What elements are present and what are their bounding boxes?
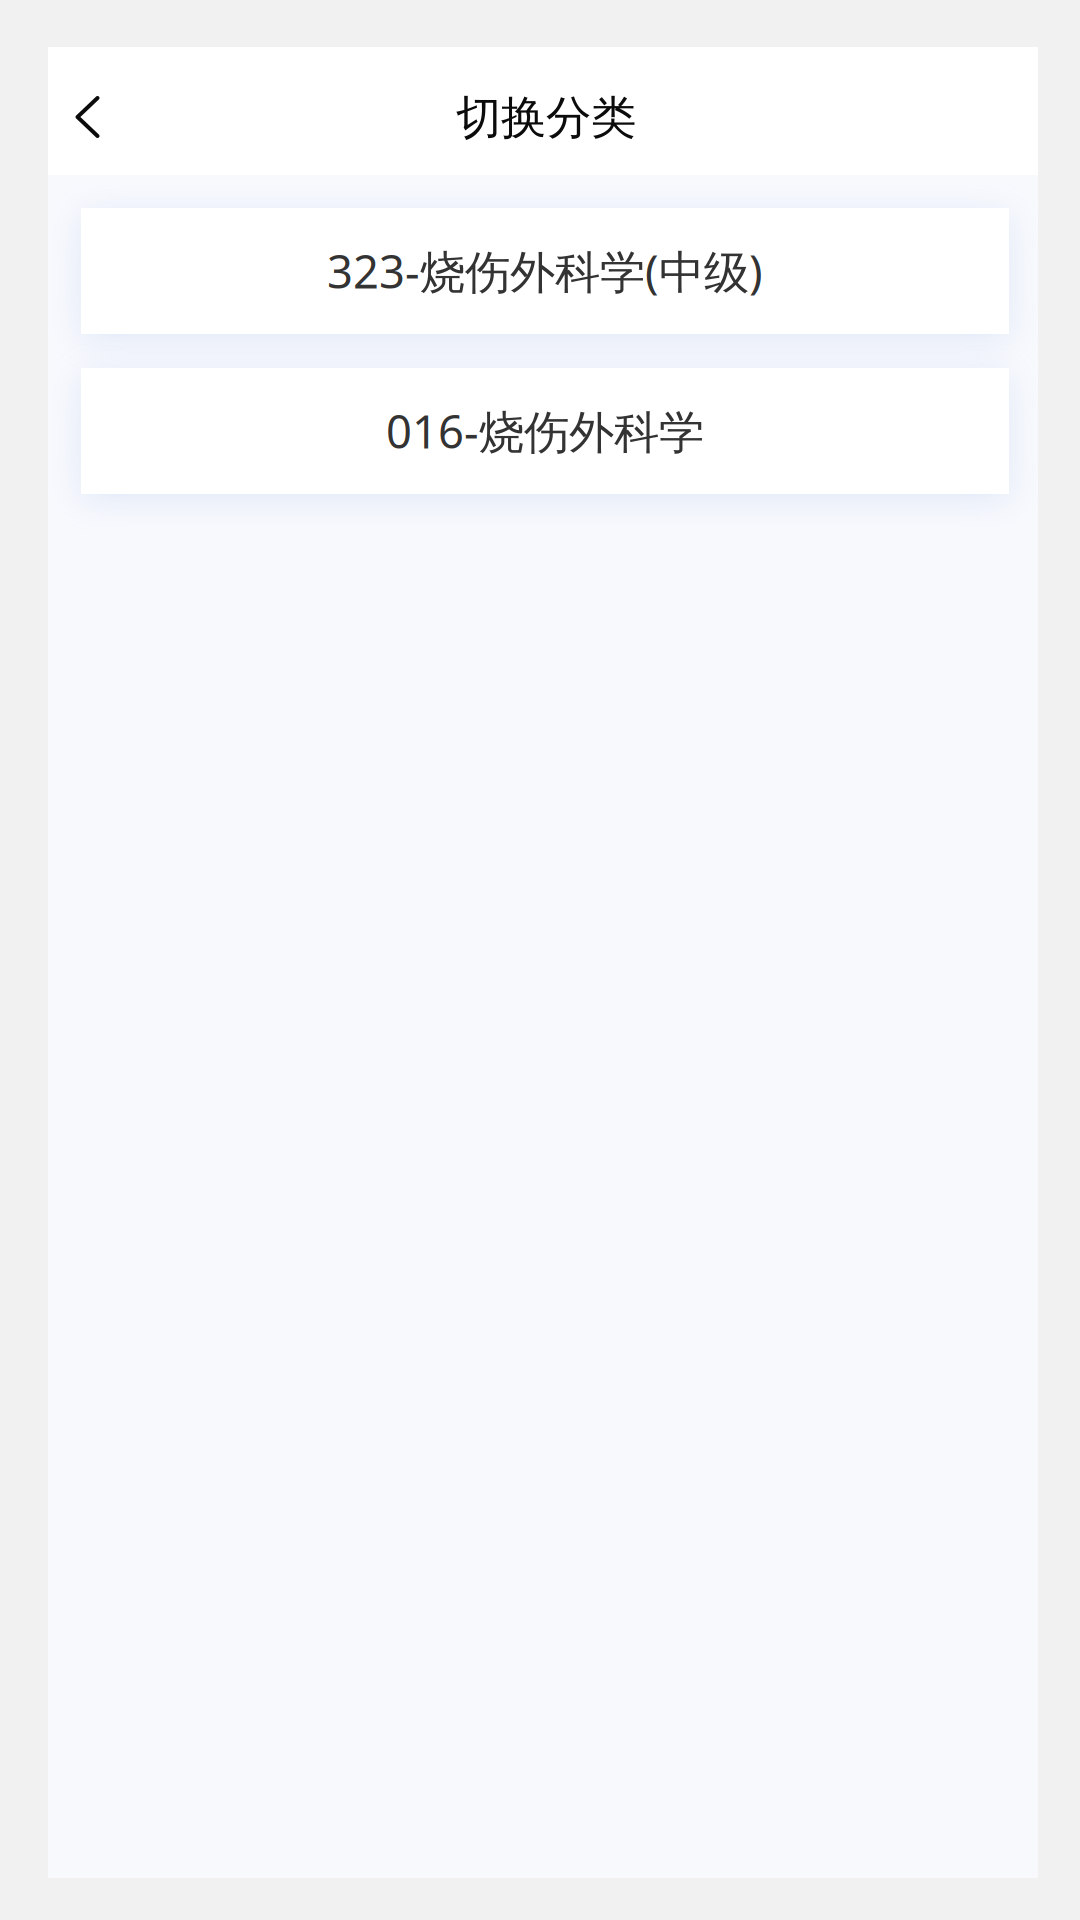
staticText: 323-烧伤外科学(中级) [327,241,763,301]
button[interactable]: Back [48,68,134,154]
staticText: 016-烧伤外科学 [386,401,704,461]
button[interactable]: 016-烧伤外科学 [81,368,1009,494]
button[interactable]: 323-烧伤外科学(中级) [81,208,1009,334]
staticText: 切换分类 [456,90,636,146]
